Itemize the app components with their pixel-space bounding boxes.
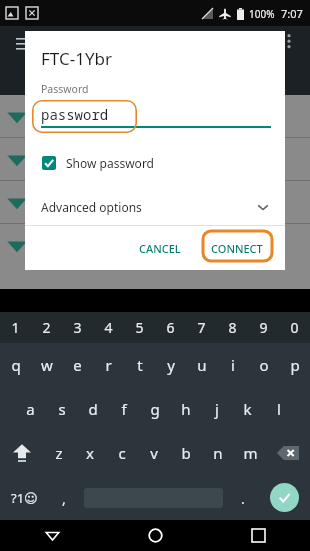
button[interactable]: Home <box>104 520 207 551</box>
button[interactable]: h <box>170 387 201 431</box>
staticText: t <box>137 355 143 375</box>
button[interactable]: q <box>0 343 31 387</box>
staticText: g <box>150 399 160 419</box>
button[interactable] <box>0 95 310 138</box>
staticText: ?1☺ <box>11 489 38 507</box>
button[interactable]: 8 <box>217 312 248 343</box>
button[interactable]: CANCEL <box>129 233 191 264</box>
staticText: n <box>213 443 223 463</box>
button[interactable]: 4 <box>93 312 124 343</box>
staticText: 8 <box>228 318 237 337</box>
staticText: 9 <box>259 318 268 337</box>
button[interactable]: Advanced options <box>25 194 285 220</box>
staticText: m <box>243 443 258 463</box>
staticText: h <box>181 399 191 419</box>
staticText: a <box>26 399 35 419</box>
staticText: l <box>277 399 281 419</box>
button[interactable]: s <box>46 387 77 431</box>
button[interactable] <box>0 181 310 224</box>
button[interactable]: Recents <box>207 520 310 551</box>
button[interactable]: Backspace <box>266 431 310 475</box>
staticText: k <box>243 399 252 419</box>
button[interactable]: f <box>108 387 139 431</box>
button[interactable]: Shift <box>0 431 43 475</box>
staticText: x <box>86 443 94 463</box>
button[interactable]: i <box>217 343 248 387</box>
staticText: f <box>121 399 127 419</box>
button[interactable]: e <box>62 343 93 387</box>
button[interactable]: z <box>43 431 74 475</box>
button[interactable]: 6 <box>155 312 186 343</box>
button[interactable]: y <box>155 343 186 387</box>
button[interactable]: r <box>93 343 124 387</box>
button[interactable]: d <box>77 387 108 431</box>
staticText: z <box>55 443 63 463</box>
staticText: c <box>118 443 126 463</box>
button[interactable]: 3 <box>62 312 93 343</box>
button[interactable]: l <box>263 387 294 431</box>
button[interactable]: 7 <box>186 312 217 343</box>
button[interactable]: CONNECT <box>199 233 275 264</box>
staticText: 100% <box>249 7 275 21</box>
button[interactable] <box>0 138 310 181</box>
button[interactable]: m <box>234 431 266 475</box>
button[interactable]: n <box>202 431 234 475</box>
button[interactable]: t <box>124 343 155 387</box>
button[interactable]: XFINITY <box>0 224 310 267</box>
staticText: 5 <box>135 318 144 337</box>
button[interactable]: b <box>170 431 202 475</box>
staticText: 7 <box>197 318 206 337</box>
button[interactable]: Menu <box>10 32 38 60</box>
staticText: 6 <box>166 318 175 337</box>
button[interactable]: ?1☺ <box>0 489 48 507</box>
button[interactable]: . <box>227 476 259 520</box>
staticText: FTC-1Ybr <box>41 47 112 70</box>
button[interactable]: More options <box>276 30 302 56</box>
button[interactable]: c <box>106 431 138 475</box>
button[interactable]: 5 <box>124 312 155 343</box>
staticText: Password <box>41 82 89 96</box>
button[interactable]: Show password <box>25 150 285 176</box>
button[interactable]: x <box>74 431 106 475</box>
staticText: r <box>105 355 112 375</box>
staticText: j <box>215 399 219 419</box>
button[interactable]: w <box>31 343 62 387</box>
button[interactable]: 9 <box>248 312 279 343</box>
staticText: Advanced options <box>41 199 142 215</box>
button[interactable]: g <box>139 387 170 431</box>
staticText: . <box>241 489 245 508</box>
staticText: v <box>150 443 158 463</box>
button[interactable]: Back <box>0 520 104 551</box>
staticText: 1 <box>11 318 20 337</box>
button[interactable]: k <box>232 387 263 431</box>
staticText: p <box>290 355 300 375</box>
staticText: 0 <box>290 318 299 337</box>
staticText: u <box>197 355 207 375</box>
button[interactable]: 0 <box>279 312 310 343</box>
staticText: d <box>88 399 98 419</box>
staticText: y <box>167 355 175 375</box>
staticText: 4 <box>104 318 113 337</box>
button[interactable]: 1 <box>0 312 31 343</box>
button[interactable]: , <box>48 476 80 520</box>
staticText: CONNECT <box>211 241 263 256</box>
button[interactable]: o <box>248 343 279 387</box>
button[interactable]: Enter <box>270 483 299 512</box>
staticText: password <box>41 105 109 124</box>
staticText: q <box>11 355 21 375</box>
button[interactable]: 2 <box>31 312 62 343</box>
button[interactable]: u <box>186 343 217 387</box>
staticText: 7:07 <box>281 6 303 21</box>
button[interactable]: p <box>279 343 310 387</box>
button[interactable]: j <box>201 387 232 431</box>
staticText: e <box>73 355 82 375</box>
staticText: Show password <box>66 155 154 171</box>
staticText: CANCEL <box>139 241 181 256</box>
staticText: b <box>181 443 191 463</box>
staticText: s <box>58 399 66 419</box>
button[interactable]: a <box>15 387 46 431</box>
staticText: i <box>231 355 235 375</box>
button[interactable]: v <box>138 431 170 475</box>
